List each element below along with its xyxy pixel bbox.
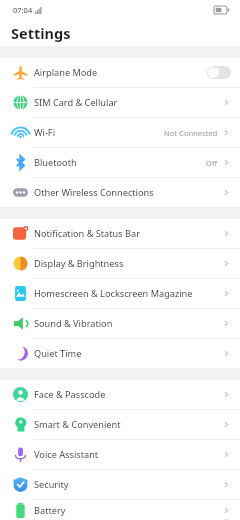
staticText: Face & Passcode bbox=[34, 388, 106, 401]
staticText: Voice Assistant bbox=[34, 448, 99, 461]
staticText: Not Connected bbox=[164, 128, 218, 138]
button[interactable]: Notification & Status Bar bbox=[0, 219, 240, 248]
staticText: SIM Card & Cellular bbox=[34, 96, 118, 109]
staticText: 07:04 bbox=[13, 5, 33, 15]
staticText: Wi-Fi bbox=[34, 126, 56, 139]
button[interactable]: Airplane Mode toggle bbox=[207, 66, 231, 79]
staticText: Bluetooth bbox=[34, 156, 77, 169]
staticText: Sound & Vibration bbox=[34, 317, 113, 330]
button[interactable]: Other Wireless Connections bbox=[0, 178, 240, 207]
staticText: Homescreen & Lockscreen Magazine bbox=[34, 287, 193, 300]
button[interactable]: Display & Brightness bbox=[0, 249, 240, 278]
button[interactable]: Homescreen & Lockscreen Magazine bbox=[0, 279, 240, 308]
button[interactable]: SIM Card & Cellular bbox=[0, 88, 240, 117]
staticText: Quiet Time bbox=[34, 347, 82, 360]
button[interactable]: Wi-Fi bbox=[0, 118, 240, 147]
button[interactable]: Voice Assistant bbox=[0, 440, 240, 469]
staticText: Security bbox=[34, 478, 69, 491]
staticText: Airplane Mode bbox=[34, 66, 98, 79]
staticText: Notification & Status Bar bbox=[34, 227, 140, 240]
staticText: Other Wireless Connections bbox=[34, 186, 154, 199]
button[interactable]: Smart & Convenient bbox=[0, 410, 240, 439]
staticText: Settings bbox=[11, 23, 71, 43]
button[interactable]: Sound & Vibration bbox=[0, 309, 240, 338]
staticText: Display & Brightness bbox=[34, 257, 124, 270]
button[interactable]: Bluetooth bbox=[0, 148, 240, 177]
button[interactable]: Face & Passcode bbox=[0, 380, 240, 409]
button[interactable]: Battery bbox=[0, 500, 240, 520]
button[interactable]: Quiet Time bbox=[0, 339, 240, 368]
staticText: Battery bbox=[34, 504, 66, 517]
button[interactable]: Airplane Mode bbox=[0, 58, 240, 87]
staticText: Off bbox=[206, 158, 218, 168]
button[interactable]: Security bbox=[0, 470, 240, 499]
staticText: Smart & Convenient bbox=[34, 418, 121, 431]
